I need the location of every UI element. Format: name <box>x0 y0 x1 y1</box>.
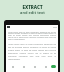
staticText: Lorem ipsum dolor sit amet consectetur a… <box>8 43 56 61</box>
button[interactable]: Tool 1 <box>18 64 29 69</box>
staticText: and edit text <box>20 10 45 15</box>
button[interactable]: Tool 2 <box>29 64 40 69</box>
staticText: EXTRACT <box>22 4 43 10</box>
staticText: Lorem ipsum dolor sit amet consectetur a… <box>8 31 56 41</box>
button[interactable]: Copy text <box>51 65 56 68</box>
button[interactable]: Tool 3 <box>40 64 51 69</box>
button[interactable]: Tool 0 <box>8 64 18 69</box>
